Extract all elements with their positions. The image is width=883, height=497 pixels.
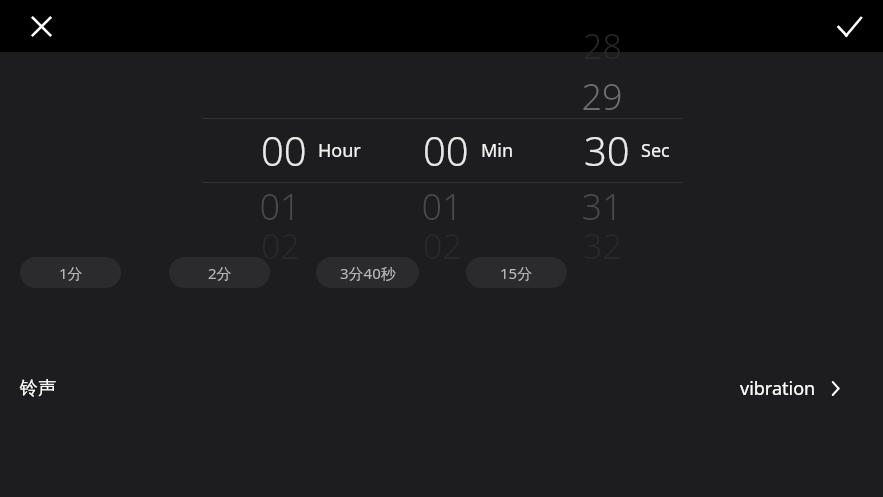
button[interactable]: Close <box>18 3 64 49</box>
staticText: 28 <box>583 23 622 69</box>
staticText: 1分 <box>59 263 83 283</box>
staticText: 29 <box>581 72 623 121</box>
staticText: Hour <box>318 138 361 163</box>
staticText: Min <box>481 138 514 163</box>
staticText: 32 <box>583 223 622 269</box>
staticText: 02 <box>261 223 300 269</box>
staticText: Sec <box>641 138 670 163</box>
staticText: 30 <box>584 123 630 177</box>
staticText: 3分40秒 <box>340 263 396 283</box>
button[interactable]: 1分 <box>20 257 121 288</box>
staticText: 00 <box>423 123 469 177</box>
staticText: 31 <box>581 182 623 231</box>
staticText: 00 <box>261 123 307 177</box>
staticText: 铃声 <box>20 377 56 400</box>
staticText: 01 <box>421 182 463 231</box>
staticText: vibration <box>740 376 816 401</box>
staticText: 15分 <box>500 263 533 283</box>
button[interactable]: 3分40秒 <box>316 257 419 288</box>
staticText: 01 <box>259 182 301 231</box>
button[interactable]: Confirm <box>826 3 872 49</box>
button[interactable]: 15分 <box>466 257 567 288</box>
staticText: 2分 <box>208 263 232 283</box>
button[interactable]: 2分 <box>169 257 270 288</box>
staticText: 02 <box>423 223 462 269</box>
button[interactable]: 铃声 <box>0 363 883 413</box>
